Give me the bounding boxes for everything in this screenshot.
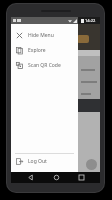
button[interactable]: Home: [49, 172, 63, 183]
staticText: Explore: [28, 47, 46, 54]
staticText: Scan QR Code: [28, 62, 61, 69]
button[interactable]: Log Out: [11, 154, 78, 169]
button[interactable]: Scan QR Code: [11, 58, 78, 73]
staticText: Hide Menu: [28, 32, 54, 39]
staticText: Log Out: [28, 158, 47, 165]
button[interactable]: Back: [23, 172, 37, 183]
button[interactable]: Hide Menu: [11, 28, 78, 43]
button[interactable]: Explore: [11, 43, 78, 58]
button[interactable]: Recents: [74, 172, 88, 183]
staticText: 14:22: [85, 18, 96, 23]
